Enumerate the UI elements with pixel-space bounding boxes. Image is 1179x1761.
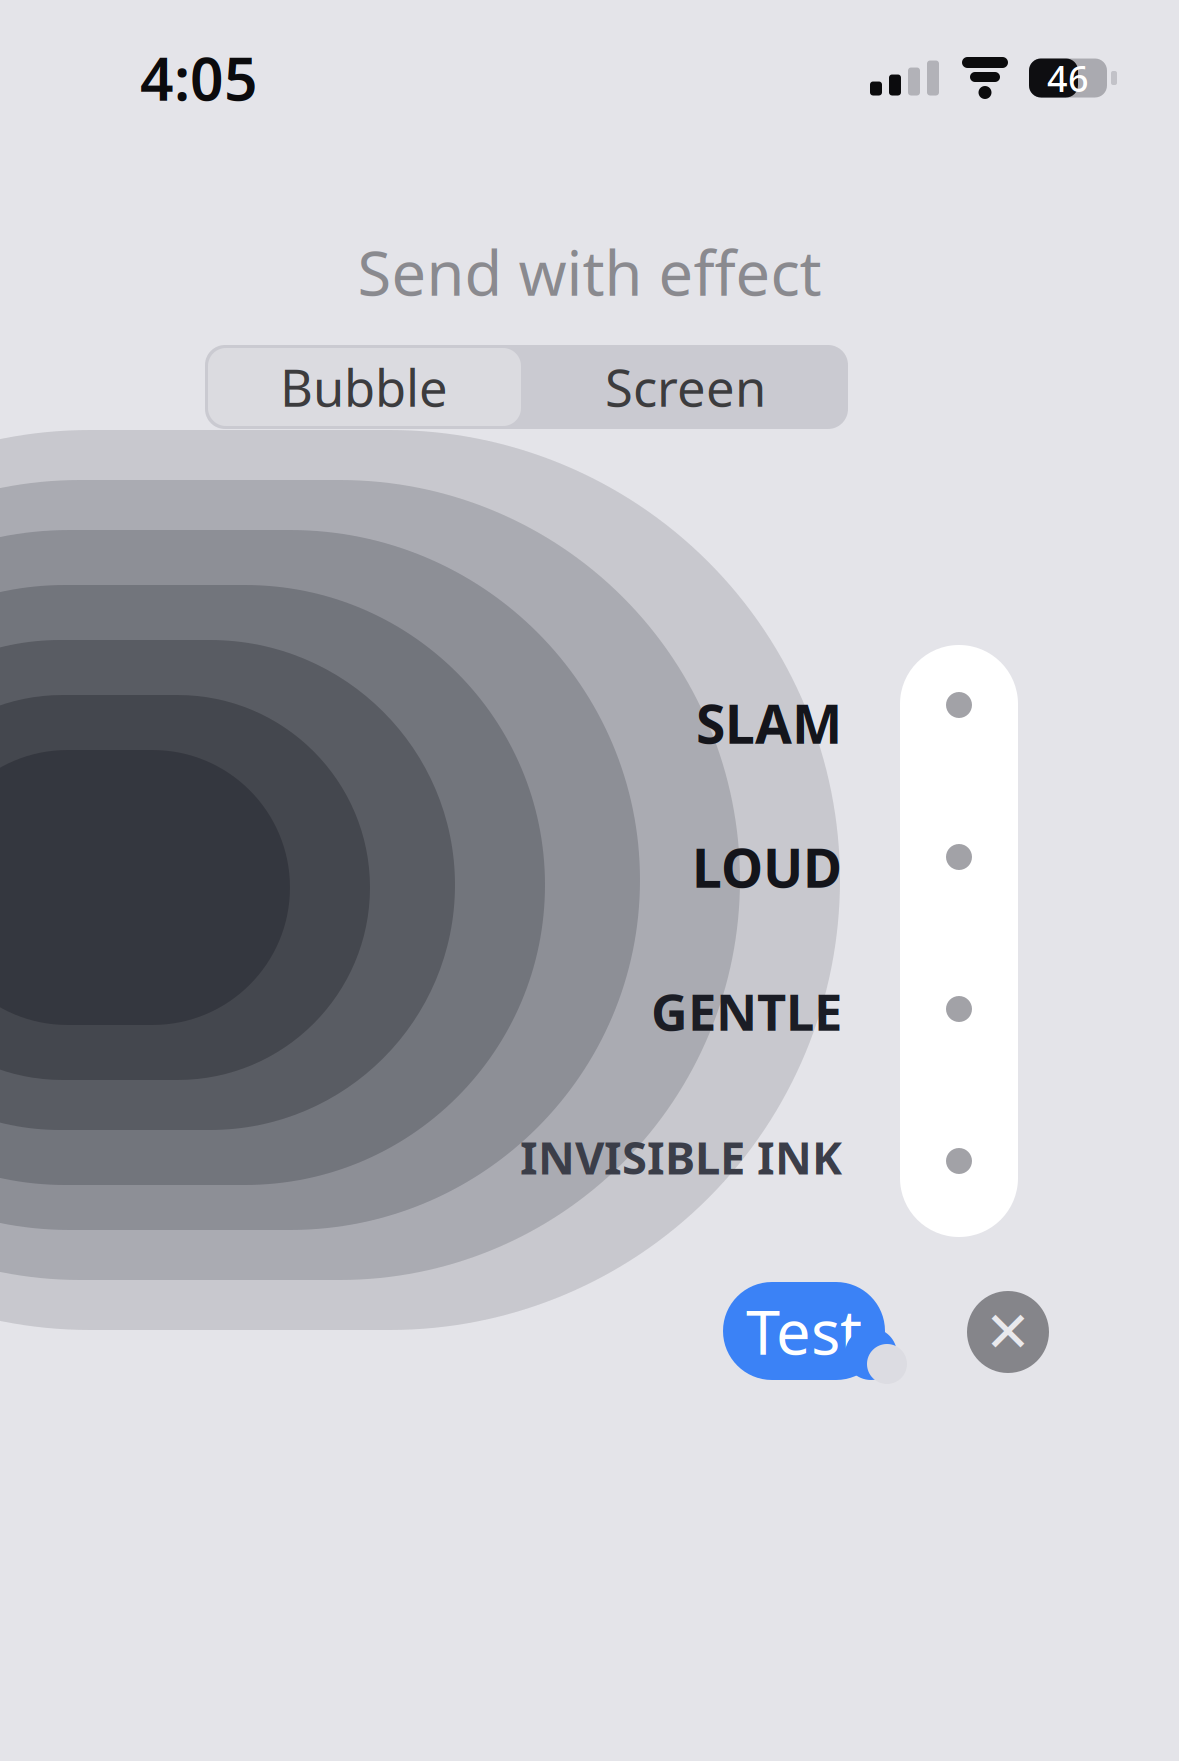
button[interactable]: Close [967,1291,1049,1373]
button[interactable]: INVISIBLE INK [282,1126,842,1188]
staticText: 46 [1047,54,1089,102]
button[interactable]: Bubble [205,345,523,429]
staticText: INVISIBLE INK [520,1127,842,1187]
button[interactable]: Screen [523,345,848,429]
button[interactable]: LOUD [282,836,842,898]
button[interactable]: GENTLE [282,980,842,1042]
button[interactable]: SLAM [282,692,842,754]
staticText: Screen [605,353,766,421]
staticText: GENTLE [651,977,842,1045]
staticText: 4:05 [140,39,258,117]
staticText: Test [746,1290,862,1372]
button[interactable]: Test [723,1276,909,1388]
staticText: LOUD [692,832,842,902]
staticText: ✕ [984,1300,1031,1364]
staticText: Send with effect [357,231,821,313]
staticText: Bubble [280,353,448,421]
staticText: SLAM [696,688,842,758]
